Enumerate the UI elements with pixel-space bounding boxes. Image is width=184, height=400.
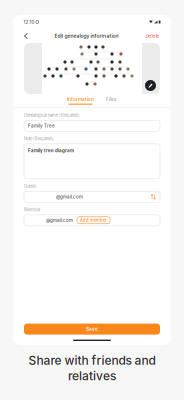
staticText: Files — [106, 96, 117, 102]
staticText: Family Tree — [28, 123, 55, 129]
button[interactable]: Edit tree — [145, 80, 156, 91]
staticText: relatives — [68, 368, 116, 383]
staticText: @gmail.com — [46, 218, 73, 223]
button[interactable]: Save — [24, 324, 160, 335]
button[interactable]: Delete — [142, 30, 162, 42]
staticText: Note (Required) — [24, 136, 54, 141]
button[interactable]: Add member — [77, 217, 110, 224]
staticText: Share with friends and — [28, 353, 155, 367]
button[interactable]: Files — [106, 96, 117, 105]
staticText: Delete — [145, 33, 159, 39]
staticText: Save — [86, 326, 98, 332]
staticText: Guests — [24, 184, 36, 189]
button[interactable]: Back — [21, 30, 30, 42]
button[interactable]: Information — [67, 96, 94, 105]
staticText: Family tree diagram — [28, 148, 74, 153]
staticText: 12:10 — [23, 19, 34, 25]
staticText: @gmail.com — [56, 194, 83, 200]
staticText: Member — [24, 207, 41, 212]
staticText: Genealogical name (Required) — [24, 113, 80, 118]
staticText: Add member — [80, 218, 107, 223]
staticText: Edit genealogy information — [54, 33, 118, 39]
staticText: Information — [67, 96, 94, 102]
